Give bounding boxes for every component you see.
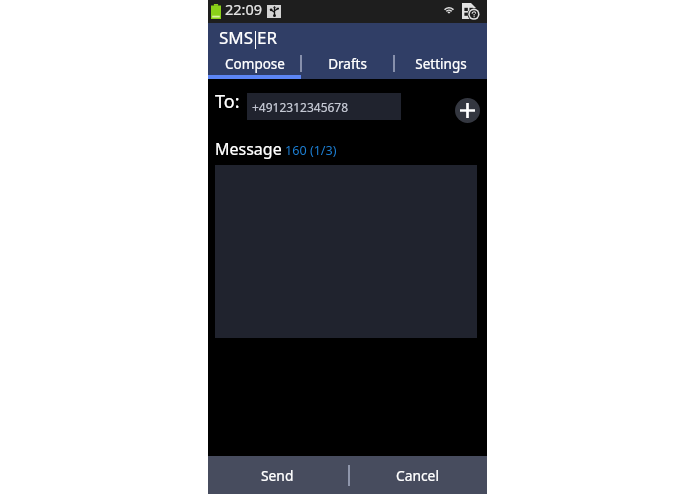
staticText: 160 (1/3)	[285, 142, 337, 159]
button[interactable]: Cancel	[347, 456, 487, 494]
button[interactable]: Add recipient	[455, 98, 480, 123]
button[interactable]: Drafts	[301, 52, 394, 75]
staticText: To:	[215, 89, 240, 114]
button[interactable]: Send	[208, 456, 347, 494]
button[interactable]: Settings	[394, 52, 487, 75]
staticText: Drafts	[328, 55, 367, 73]
button[interactable]: Recipient phone number	[247, 93, 401, 120]
staticText: Cancel	[396, 466, 439, 485]
staticText: ER	[257, 26, 278, 49]
staticText: Send	[261, 466, 294, 485]
staticText: +4912312345678	[252, 99, 349, 115]
staticText: Message	[215, 138, 282, 160]
staticText: SMS	[219, 26, 254, 49]
staticText: Compose	[225, 55, 285, 73]
staticText: Settings	[415, 55, 467, 73]
button[interactable]: Compose	[208, 52, 301, 75]
staticText: 22:09	[225, 0, 263, 19]
